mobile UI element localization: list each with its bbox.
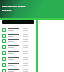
button[interactable] xyxy=(2,20,34,24)
button[interactable] xyxy=(0,38,64,43)
button[interactable] xyxy=(0,56,64,61)
button[interactable] xyxy=(0,44,64,49)
staticText: MONTH xyxy=(2,8,12,11)
button[interactable] xyxy=(0,62,64,67)
button[interactable] xyxy=(0,27,64,32)
button[interactable] xyxy=(0,68,64,72)
staticText: NEW BEAUTY EVERY xyxy=(2,4,26,7)
button[interactable] xyxy=(0,33,64,38)
button[interactable] xyxy=(0,50,64,55)
